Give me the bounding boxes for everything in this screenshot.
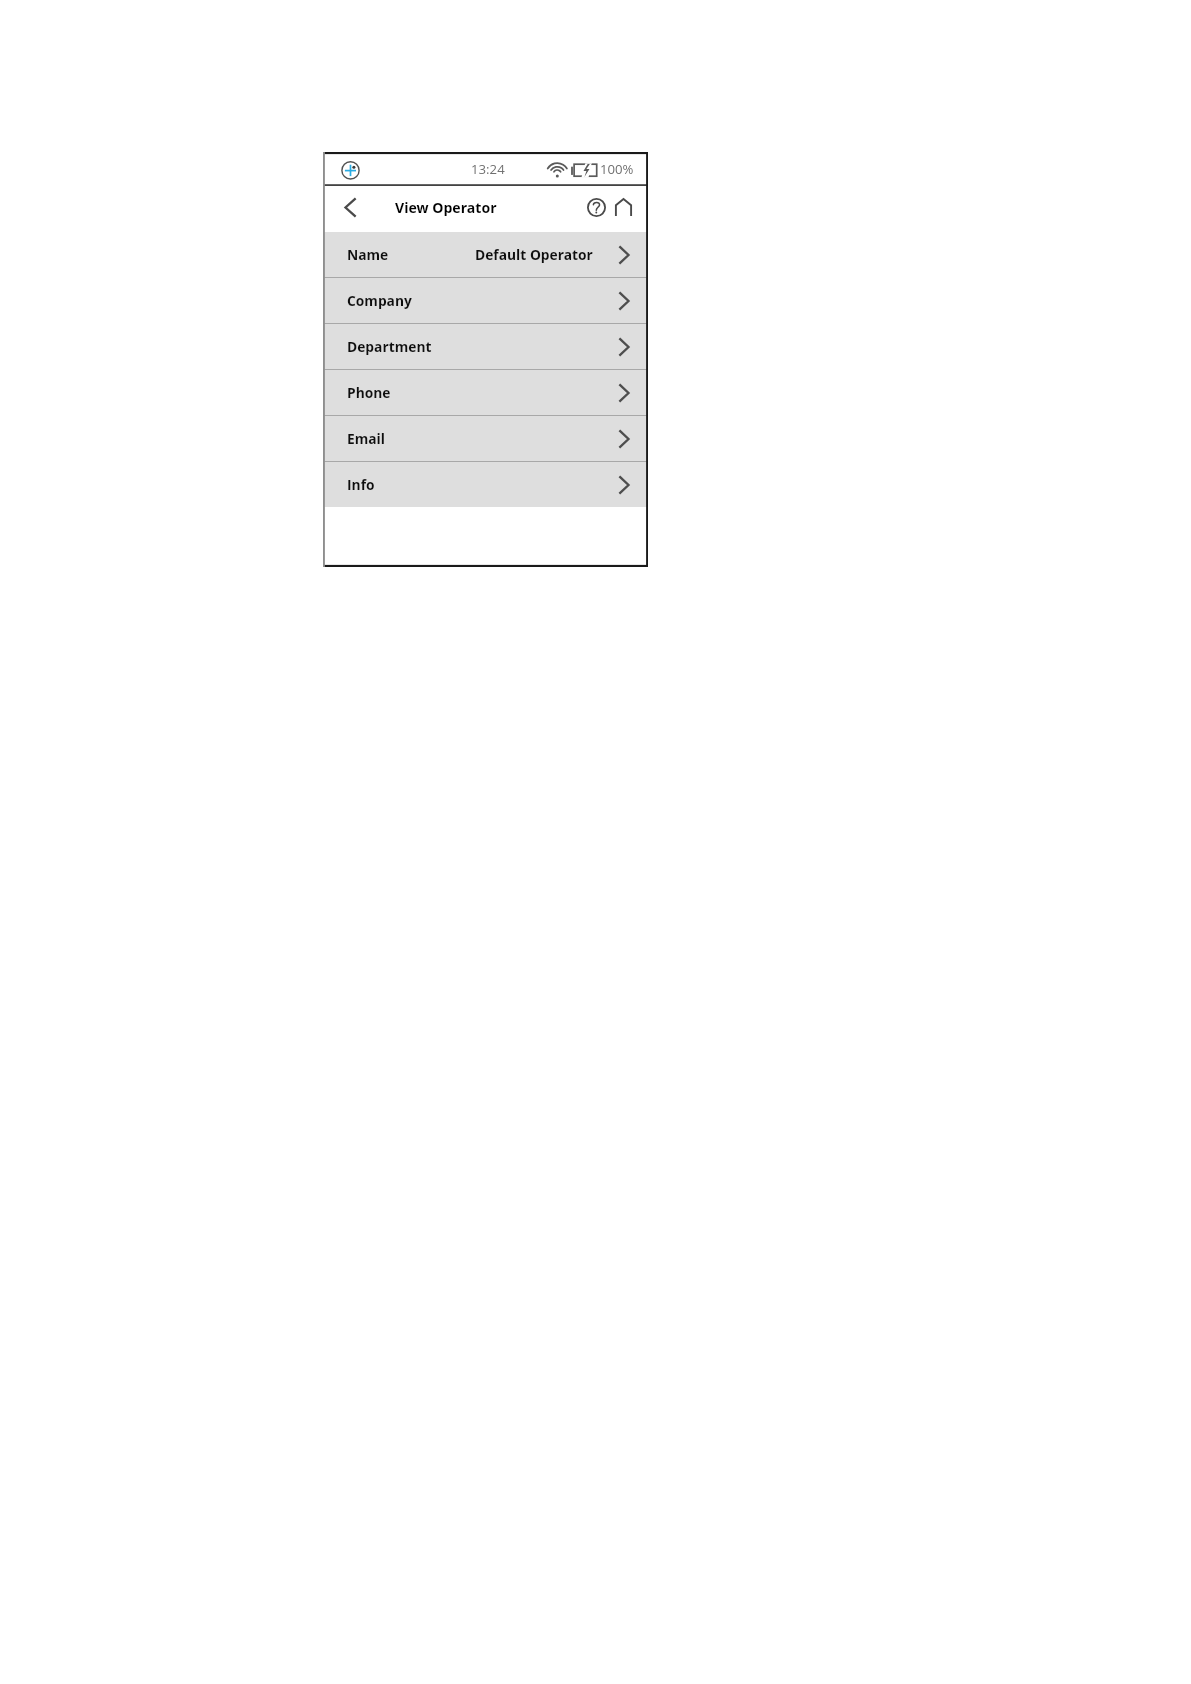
staticText: Email [347, 429, 386, 448]
staticText: 13:24 [471, 160, 505, 178]
button[interactable]: Help [584, 195, 608, 219]
button[interactable]: Back [332, 189, 368, 225]
button[interactable]: Company [323, 278, 648, 323]
staticText: View Operator [395, 198, 497, 217]
button[interactable]: Name [323, 232, 648, 277]
staticText: Name [347, 245, 389, 264]
button[interactable]: Department [323, 324, 648, 369]
button[interactable]: Phone [323, 370, 648, 415]
button[interactable]: Info [323, 462, 648, 507]
staticText: Department [347, 337, 432, 356]
button[interactable]: Home [612, 196, 634, 218]
button[interactable]: Email [323, 416, 648, 461]
staticText: Default Operator [475, 245, 593, 264]
staticText: Info [347, 475, 375, 494]
staticText: Phone [347, 383, 391, 402]
staticText: 100% [600, 160, 634, 178]
staticText: Company [347, 291, 412, 310]
